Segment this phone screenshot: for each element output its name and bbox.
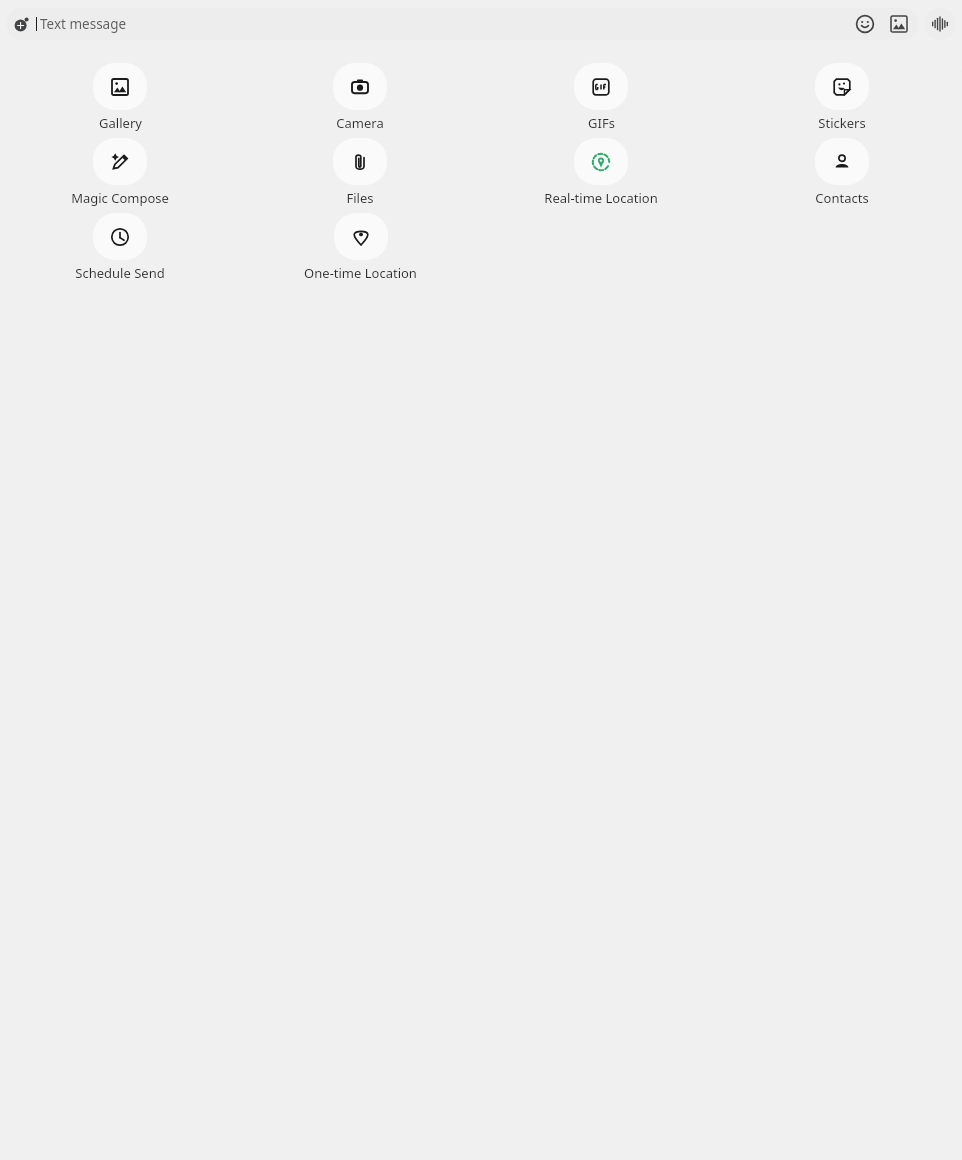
button[interactable]: Gallery: [889, 14, 909, 34]
staticText: Gallery: [99, 114, 142, 132]
staticText: Magic Compose: [71, 189, 169, 207]
button[interactable]: Add attachment: [6, 8, 919, 40]
button[interactable]: Real-time Location: [544, 138, 658, 207]
staticText: Contacts: [815, 189, 869, 207]
staticText: Stickers: [818, 114, 866, 132]
staticText: Schedule Send: [75, 264, 165, 282]
staticText: GIFs: [588, 114, 615, 132]
button[interactable]: Contacts: [815, 138, 869, 207]
button[interactable]: Camera: [333, 63, 387, 132]
button[interactable]: Magic Compose: [71, 138, 169, 207]
button[interactable]: Record audio: [924, 8, 956, 40]
button[interactable]: One-time Location: [304, 213, 417, 282]
button[interactable]: GIFs: [574, 63, 628, 132]
button[interactable]: Gallery: [93, 63, 147, 132]
staticText: Real-time Location: [544, 189, 658, 207]
staticText: Camera: [336, 114, 384, 132]
button[interactable]: Stickers: [815, 63, 869, 132]
staticText: Files: [346, 189, 374, 207]
button[interactable]: Files: [333, 138, 387, 207]
staticText: One-time Location: [304, 264, 417, 282]
button[interactable]: Emoji: [855, 14, 875, 34]
button[interactable]: Add attachment: [14, 17, 29, 32]
staticText: Text message: [40, 15, 127, 33]
button[interactable]: Schedule Send: [75, 213, 165, 282]
